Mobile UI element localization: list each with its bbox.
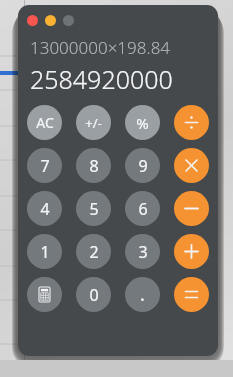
button[interactable]: 7 (27, 148, 62, 183)
button[interactable]: Plus (174, 234, 209, 269)
button[interactable]: % (125, 105, 160, 140)
button[interactable]: Close (27, 15, 38, 26)
staticText: 2 (89, 241, 99, 263)
staticText: . (140, 282, 145, 307)
staticText: 3 (138, 241, 148, 263)
button[interactable]: Minimize (45, 15, 56, 26)
staticText: 4 (40, 198, 50, 220)
staticText: 1 (40, 241, 50, 263)
button[interactable]: 0 (76, 277, 111, 312)
button[interactable]: 5 (76, 191, 111, 226)
button[interactable]: Calculator (27, 277, 62, 312)
button[interactable]: 9 (125, 148, 160, 183)
button[interactable]: AC (27, 105, 62, 140)
staticText: 13000000×198.84 (30, 36, 171, 59)
button[interactable]: 2 (76, 234, 111, 269)
button[interactable]: 3 (125, 234, 160, 269)
staticText: +/- (85, 114, 102, 132)
staticText: AC (36, 113, 54, 132)
button[interactable]: . (125, 277, 160, 312)
button[interactable]: 1 (27, 234, 62, 269)
button[interactable]: Zoom (63, 15, 74, 26)
staticText: % (136, 113, 149, 133)
staticText: 9 (138, 155, 148, 177)
staticText: 7 (40, 155, 50, 177)
button[interactable]: 8 (76, 148, 111, 183)
staticText: 5 (89, 198, 99, 220)
staticText: 0 (89, 284, 99, 306)
button[interactable]: Plus minus (76, 105, 111, 140)
staticText: 8 (89, 155, 99, 177)
button[interactable]: Equals (174, 277, 209, 312)
button[interactable]: Multiply (174, 148, 209, 183)
staticText: 2584920000 (30, 62, 173, 96)
button[interactable]: Divide (174, 105, 209, 140)
staticText: 6 (138, 198, 148, 220)
button[interactable]: Minus (174, 191, 209, 226)
button[interactable]: 6 (125, 191, 160, 226)
button[interactable]: 4 (27, 191, 62, 226)
